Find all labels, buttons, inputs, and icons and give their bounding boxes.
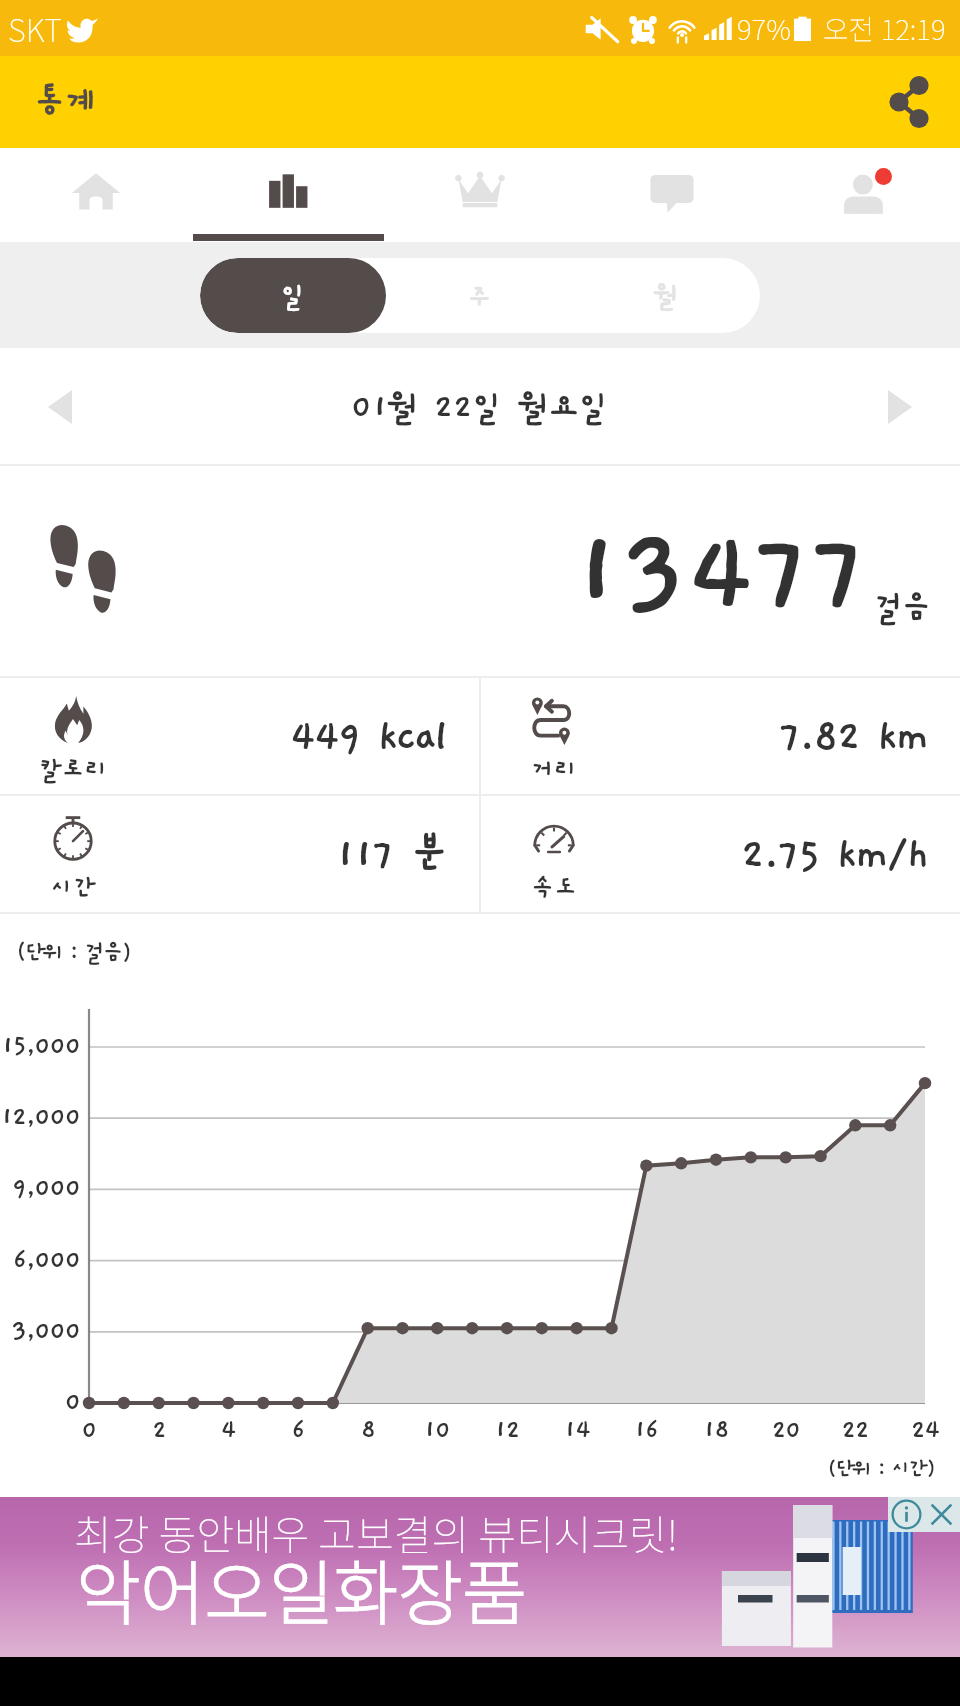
staticText: 449 kcal xyxy=(290,714,447,760)
staticText: 7.82 km xyxy=(779,714,928,760)
staticText: 3,000 xyxy=(0,1316,80,1345)
staticText: (단위 : 시간) xyxy=(827,1457,934,1481)
staticText: 4 xyxy=(198,1416,258,1444)
staticText: 시간 xyxy=(26,874,120,902)
button[interactable]: 일 xyxy=(200,258,386,333)
staticText: 24 xyxy=(895,1416,955,1444)
staticText: 걸음 xyxy=(874,590,930,626)
button[interactable]: 칼로리 xyxy=(0,678,479,794)
button[interactable]: 최강 동안배우 고보결의 뷰티시크릿! xyxy=(0,1497,960,1657)
staticText: 18 xyxy=(686,1416,746,1444)
button[interactable]: Ad info xyxy=(890,1498,923,1531)
button[interactable]: Close ad xyxy=(925,1498,958,1531)
button[interactable]: 속도 xyxy=(481,796,960,912)
button[interactable]: Chat xyxy=(576,148,768,242)
staticText: 거리 xyxy=(507,756,601,784)
staticText: 117 분 xyxy=(336,832,447,878)
staticText: 일 xyxy=(281,281,306,311)
button[interactable]: Share xyxy=(878,71,940,133)
staticText: (단위 : 걸음) xyxy=(16,940,130,965)
staticText: 0 xyxy=(59,1416,119,1444)
button[interactable]: 시간 xyxy=(0,796,479,912)
button[interactable]: Statistics xyxy=(192,148,384,242)
button[interactable]: Profile xyxy=(768,148,960,242)
staticText: 10 xyxy=(407,1416,467,1444)
staticText: 최강 동안배우 고보결의 뷰티시크릿! xyxy=(74,1502,679,1561)
button[interactable]: 월 xyxy=(573,258,760,333)
staticText: 14 xyxy=(547,1416,607,1444)
staticText: 97% xyxy=(737,8,791,49)
staticText: 악어오일화장품 xyxy=(76,1538,527,1639)
staticText: 통계 xyxy=(34,83,97,121)
button[interactable]: Previous day xyxy=(30,377,90,437)
staticText: 13477 xyxy=(572,512,868,632)
staticText: 15,000 xyxy=(0,1031,80,1060)
staticText: 16 xyxy=(616,1416,676,1444)
staticText: 오전 12:19 xyxy=(823,8,946,49)
staticText: 01월 22일 월요일 xyxy=(351,389,610,426)
staticText: 6,000 xyxy=(0,1245,80,1274)
staticText: 속도 xyxy=(507,874,601,902)
staticText: 12 xyxy=(477,1416,537,1444)
button[interactable]: Next day xyxy=(870,377,930,437)
staticText: SKT xyxy=(8,6,62,51)
staticText: 월 xyxy=(654,281,679,311)
staticText: 8 xyxy=(338,1416,398,1444)
staticText: 0 xyxy=(0,1387,80,1416)
button[interactable]: Home xyxy=(0,148,192,242)
staticText: 칼로리 xyxy=(26,756,120,784)
staticText: 20 xyxy=(756,1416,816,1444)
staticText: 9,000 xyxy=(0,1173,80,1202)
button[interactable]: 거리 xyxy=(481,678,960,794)
button[interactable]: Ranking xyxy=(384,148,576,242)
staticText: 주 xyxy=(467,281,492,311)
staticText: 6 xyxy=(268,1416,328,1444)
staticText: 12,000 xyxy=(0,1102,80,1131)
staticText: 22 xyxy=(825,1416,885,1444)
staticText: 2.75 km/h xyxy=(741,832,928,878)
staticText: 2 xyxy=(129,1416,189,1444)
